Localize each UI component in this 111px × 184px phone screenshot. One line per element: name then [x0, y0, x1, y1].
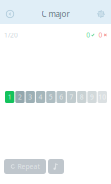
staticText: 0 — [86, 31, 90, 39]
staticText: 2 — [18, 93, 22, 101]
staticText: 8 — [80, 93, 84, 101]
button[interactable]: Settings — [91, 0, 111, 24]
button[interactable]: Repeat — [4, 159, 46, 174]
staticText: 3 — [28, 93, 32, 101]
staticText: 1 — [8, 93, 12, 101]
staticText: 5 — [49, 93, 53, 101]
staticText: 6 — [59, 93, 63, 101]
button[interactable]: Play note — [48, 159, 64, 174]
staticText: 0 — [99, 31, 103, 39]
staticText: 1/20 — [4, 31, 18, 39]
staticText: 10 — [98, 93, 106, 101]
button[interactable]: Back — [0, 0, 20, 24]
staticText: 9 — [90, 93, 94, 101]
staticText: C major — [41, 9, 69, 19]
staticText: 7 — [69, 93, 73, 101]
staticText: 4 — [39, 93, 43, 101]
staticText: Repeat — [17, 162, 39, 171]
